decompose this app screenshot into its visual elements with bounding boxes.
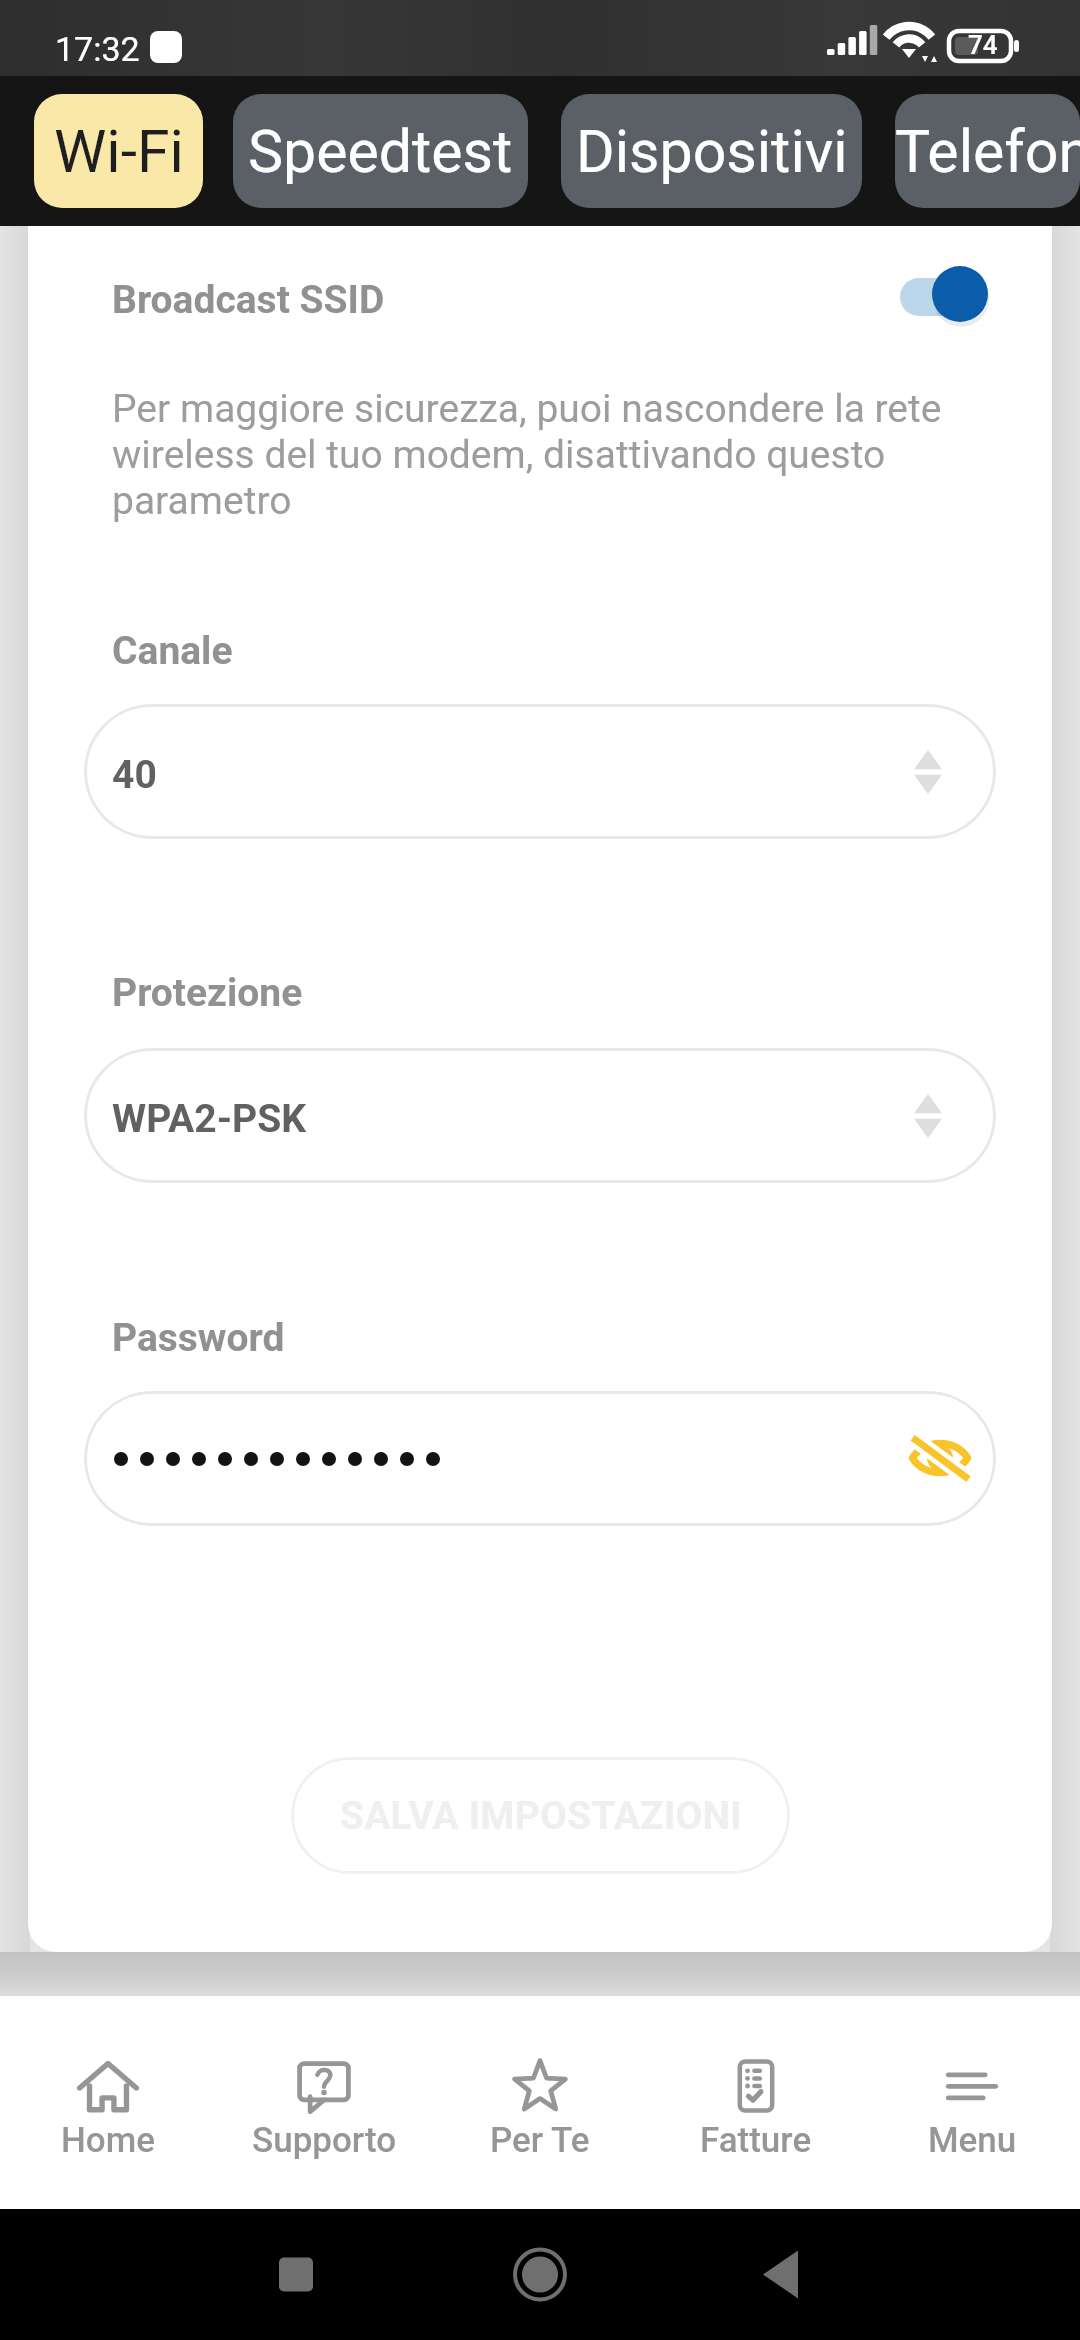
staticText: WPA2-PSK [112, 1096, 307, 1142]
button[interactable]: Wi-Fi [34, 94, 203, 208]
staticText: Per Te [490, 2120, 590, 2161]
staticText: Home [61, 2120, 155, 2161]
staticText: Supporto [252, 2120, 397, 2161]
button[interactable]: Speedtest [233, 94, 528, 208]
button[interactable]: Telefono [895, 94, 1080, 208]
staticText: SALVA IMPOSTAZIONI [340, 1793, 742, 1839]
button[interactable]: Mostra password [898, 1416, 982, 1500]
staticText: Protezione [112, 970, 303, 1016]
button[interactable]: 40 [84, 704, 996, 839]
staticText: Broadcast SSID [112, 277, 385, 323]
staticText: Per maggiore sicurezza, puoi nascondere … [112, 386, 992, 524]
button[interactable]: Broadcast SSID [888, 256, 1004, 332]
button[interactable]: SALVA IMPOSTAZIONI [291, 1757, 790, 1874]
staticText: Menu [928, 2120, 1017, 2161]
staticText: Canale [112, 628, 233, 674]
button[interactable]: Mostra password [84, 1391, 996, 1526]
button[interactable]: Supporto [216, 1996, 432, 2209]
button[interactable]: WPA2-PSK [84, 1048, 996, 1183]
button[interactable]: Per Te [432, 1996, 648, 2209]
staticText: Dispositivi [576, 117, 848, 186]
staticText: Telefono [895, 117, 1080, 186]
button[interactable]: Home [0, 1996, 216, 2209]
button[interactable]: Menu [864, 1996, 1080, 2209]
button[interactable]: Dispositivi [561, 94, 862, 208]
staticText: Fatture [700, 2120, 812, 2161]
staticText: 74 [968, 30, 998, 60]
staticText: Password [112, 1315, 285, 1361]
staticText: Wi-Fi [54, 117, 184, 186]
staticText: Speedtest [248, 117, 513, 186]
button[interactable]: Fatture [648, 1996, 864, 2209]
staticText: 40 [112, 752, 157, 798]
staticText: 17:32 [55, 29, 140, 69]
